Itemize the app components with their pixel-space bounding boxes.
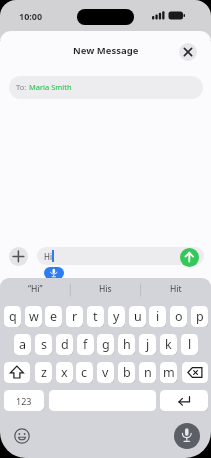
staticText: Maria Smith [29,82,72,92]
staticText: To: [16,82,29,92]
button[interactable]: j [139,334,156,355]
staticText: h [123,336,131,353]
button[interactable]: u [129,306,146,327]
button[interactable]: v [97,362,114,383]
staticText: i [156,308,160,325]
button[interactable]: p [191,306,208,327]
staticText: x [61,364,68,381]
staticText: l [188,336,192,353]
button[interactable]: x [56,362,73,383]
button[interactable] [49,390,156,411]
staticText: p [196,308,204,325]
staticText: r [72,308,78,325]
staticText: y [113,308,120,325]
staticText: “Hi” [28,283,43,295]
button[interactable]: o [170,306,187,327]
button[interactable]: b [118,362,135,383]
button[interactable]: d [56,334,73,355]
button[interactable]: g [97,334,114,355]
button[interactable] [160,390,208,411]
staticText: Hi [44,251,52,262]
staticText: His [99,283,112,295]
staticText: s [41,336,47,353]
staticText: a [19,336,27,353]
staticText: o [175,308,183,325]
staticText: f [83,336,88,353]
staticText: m [163,364,175,381]
staticText: Hit [170,283,182,295]
button[interactable]: n [139,362,156,383]
button[interactable]: f [77,334,94,355]
staticText: z [41,364,47,381]
staticText: g [102,336,110,353]
staticText: d [61,336,69,353]
button[interactable] [182,362,208,383]
button[interactable]: k [160,334,177,355]
button[interactable]: w [25,306,42,327]
button[interactable]: z [35,362,52,383]
button[interactable] [9,247,28,266]
staticText: New Message [73,44,139,57]
button[interactable]: h [118,334,135,355]
button[interactable] [37,247,204,265]
button[interactable]: To: [9,76,203,99]
staticText: w [29,308,39,325]
staticText: t [93,308,98,325]
staticText: q [9,308,17,325]
staticText: j [146,336,150,353]
button[interactable]: r [66,306,83,327]
staticText: k [165,336,172,353]
button[interactable] [179,43,197,61]
button[interactable]: i [149,306,166,327]
button[interactable] [4,362,30,383]
button[interactable] [14,428,30,444]
button[interactable]: s [35,334,52,355]
button[interactable]: t [87,306,104,327]
button[interactable]: q [4,306,21,327]
staticText: b [123,364,131,381]
button[interactable]: y [108,306,125,327]
staticText: c [81,364,88,381]
staticText: u [134,308,142,325]
staticText: e [50,308,58,325]
button[interactable]: e [45,306,62,327]
button[interactable]: l [181,334,198,355]
button[interactable]: 123 [4,390,44,411]
staticText: 10:00 [19,10,43,22]
button[interactable]: c [76,362,93,383]
button[interactable] [180,248,199,267]
button[interactable] [174,423,200,449]
staticText: n [144,364,152,381]
staticText: v [102,364,109,381]
button[interactable]: m [160,362,177,383]
button[interactable]: a [14,334,31,355]
staticText: 123 [16,395,32,407]
